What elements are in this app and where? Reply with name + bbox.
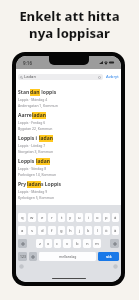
button[interactable]: Ladan <box>18 74 103 80</box>
button[interactable]: Emoji <box>29 252 37 261</box>
staticText: h <box>69 228 72 234</box>
staticText: Avbryt <box>106 74 119 80</box>
button[interactable]: Loppis i <box>16 135 121 158</box>
button[interactable]: y <box>67 213 74 222</box>
button[interactable]: sök <box>98 252 119 261</box>
button[interactable]: f <box>48 226 56 235</box>
staticText: å <box>114 215 117 221</box>
staticText: s Loppis <box>41 181 62 188</box>
staticText: p <box>105 215 108 221</box>
button[interactable]: m <box>93 239 101 248</box>
button[interactable]: p <box>103 213 110 222</box>
staticText: j <box>79 228 81 234</box>
button[interactable]: t <box>58 213 65 222</box>
staticText: sök <box>106 254 112 259</box>
button[interactable]: a <box>18 226 26 235</box>
button[interactable]: Pry <box>16 181 121 204</box>
staticText: n <box>86 241 89 247</box>
staticText: ladan <box>32 112 46 119</box>
button[interactable]: Loppis <box>16 158 121 181</box>
button[interactable]: Numbers <box>18 252 27 261</box>
staticText: ladan <box>27 181 41 188</box>
button[interactable]: Backspace <box>110 239 119 248</box>
staticText: Kyrkvägen 5, Kommun <box>18 195 55 200</box>
other: Dictation <box>113 264 118 269</box>
staticText: d <box>41 228 44 234</box>
staticText: c <box>56 241 59 247</box>
other: Clear <box>98 76 101 79</box>
staticText: dan <box>30 89 40 96</box>
staticText: Enkelt att hitta nya loppisar <box>0 7 139 42</box>
staticText: y <box>69 215 72 221</box>
staticText: g <box>60 228 63 234</box>
button[interactable]: å <box>112 213 119 222</box>
staticText: ladan <box>36 158 50 165</box>
staticText: Aarre <box>18 112 32 119</box>
button[interactable]: z <box>36 239 43 248</box>
staticText: ö <box>105 228 108 234</box>
staticText: Loppis · Måndag 9 <box>18 189 48 194</box>
staticText: l <box>97 228 99 234</box>
staticText: Storgatan 3, Kommun <box>18 149 54 154</box>
button[interactable]: v <box>63 239 71 248</box>
button[interactable]: x <box>45 239 52 248</box>
staticText: x <box>47 241 50 247</box>
button[interactable]: h <box>67 226 74 235</box>
staticText: u <box>78 215 81 221</box>
staticText: Loppis i <box>18 135 39 142</box>
button[interactable]: e <box>38 213 46 222</box>
button[interactable]: i <box>85 213 92 222</box>
staticText: Stan <box>18 89 30 96</box>
button[interactable]: mellanslag <box>39 252 96 261</box>
button[interactable]: Aarre <box>16 112 121 135</box>
staticText: w <box>30 215 34 221</box>
staticText: 9:16 <box>23 60 32 66</box>
button[interactable]: q <box>18 213 26 222</box>
button[interactable]: d <box>38 226 46 235</box>
button[interactable]: s <box>28 226 36 235</box>
button[interactable]: Stan <box>16 89 121 112</box>
staticText: v <box>66 241 69 247</box>
staticText: f <box>51 228 53 234</box>
button[interactable]: c <box>54 239 61 248</box>
staticText: o <box>96 215 99 221</box>
staticText: Bygatan 22, Kommun <box>18 126 53 131</box>
button[interactable]: k <box>85 226 92 235</box>
staticText: mellanslag <box>59 254 77 259</box>
staticText: e <box>41 215 44 221</box>
staticText: Loppis <box>18 158 36 165</box>
staticText: loppis <box>40 89 57 96</box>
button[interactable]: w <box>28 213 36 222</box>
staticText: t <box>61 215 63 221</box>
button[interactable]: u <box>76 213 83 222</box>
staticText: Loppis · Måndag 4 <box>18 97 48 102</box>
staticText: k <box>87 228 90 234</box>
button[interactable]: Shift <box>18 239 27 248</box>
other: Keyboard settings <box>19 264 24 269</box>
staticText: ladan <box>39 135 53 142</box>
staticText: ä <box>114 228 117 234</box>
staticText: Loppis · Söndag 8 <box>18 166 47 171</box>
button[interactable]: ä <box>112 226 119 235</box>
staticText: m <box>95 241 99 247</box>
staticText: Loppis · Lördag 7 <box>18 143 46 148</box>
staticText: a <box>21 228 24 234</box>
staticText: s <box>31 228 34 234</box>
button[interactable]: o <box>94 213 101 222</box>
button[interactable]: g <box>58 226 65 235</box>
staticText: Ladan <box>24 74 37 80</box>
button[interactable]: l <box>94 226 101 235</box>
button[interactable]: ö <box>103 226 110 235</box>
button[interactable]: b <box>73 239 81 248</box>
staticText: Andersgatan 1, Kommun <box>18 103 58 108</box>
button[interactable]: n <box>83 239 91 248</box>
button[interactable]: r <box>48 213 56 222</box>
staticText: z <box>39 241 41 247</box>
staticText: r <box>51 215 53 221</box>
staticText: Pry <box>18 181 27 188</box>
staticText: q <box>21 215 24 221</box>
staticText: 123 <box>20 254 26 259</box>
button[interactable]: Avbryt <box>106 74 119 80</box>
button[interactable]: j <box>76 226 83 235</box>
staticText: i <box>88 215 90 221</box>
